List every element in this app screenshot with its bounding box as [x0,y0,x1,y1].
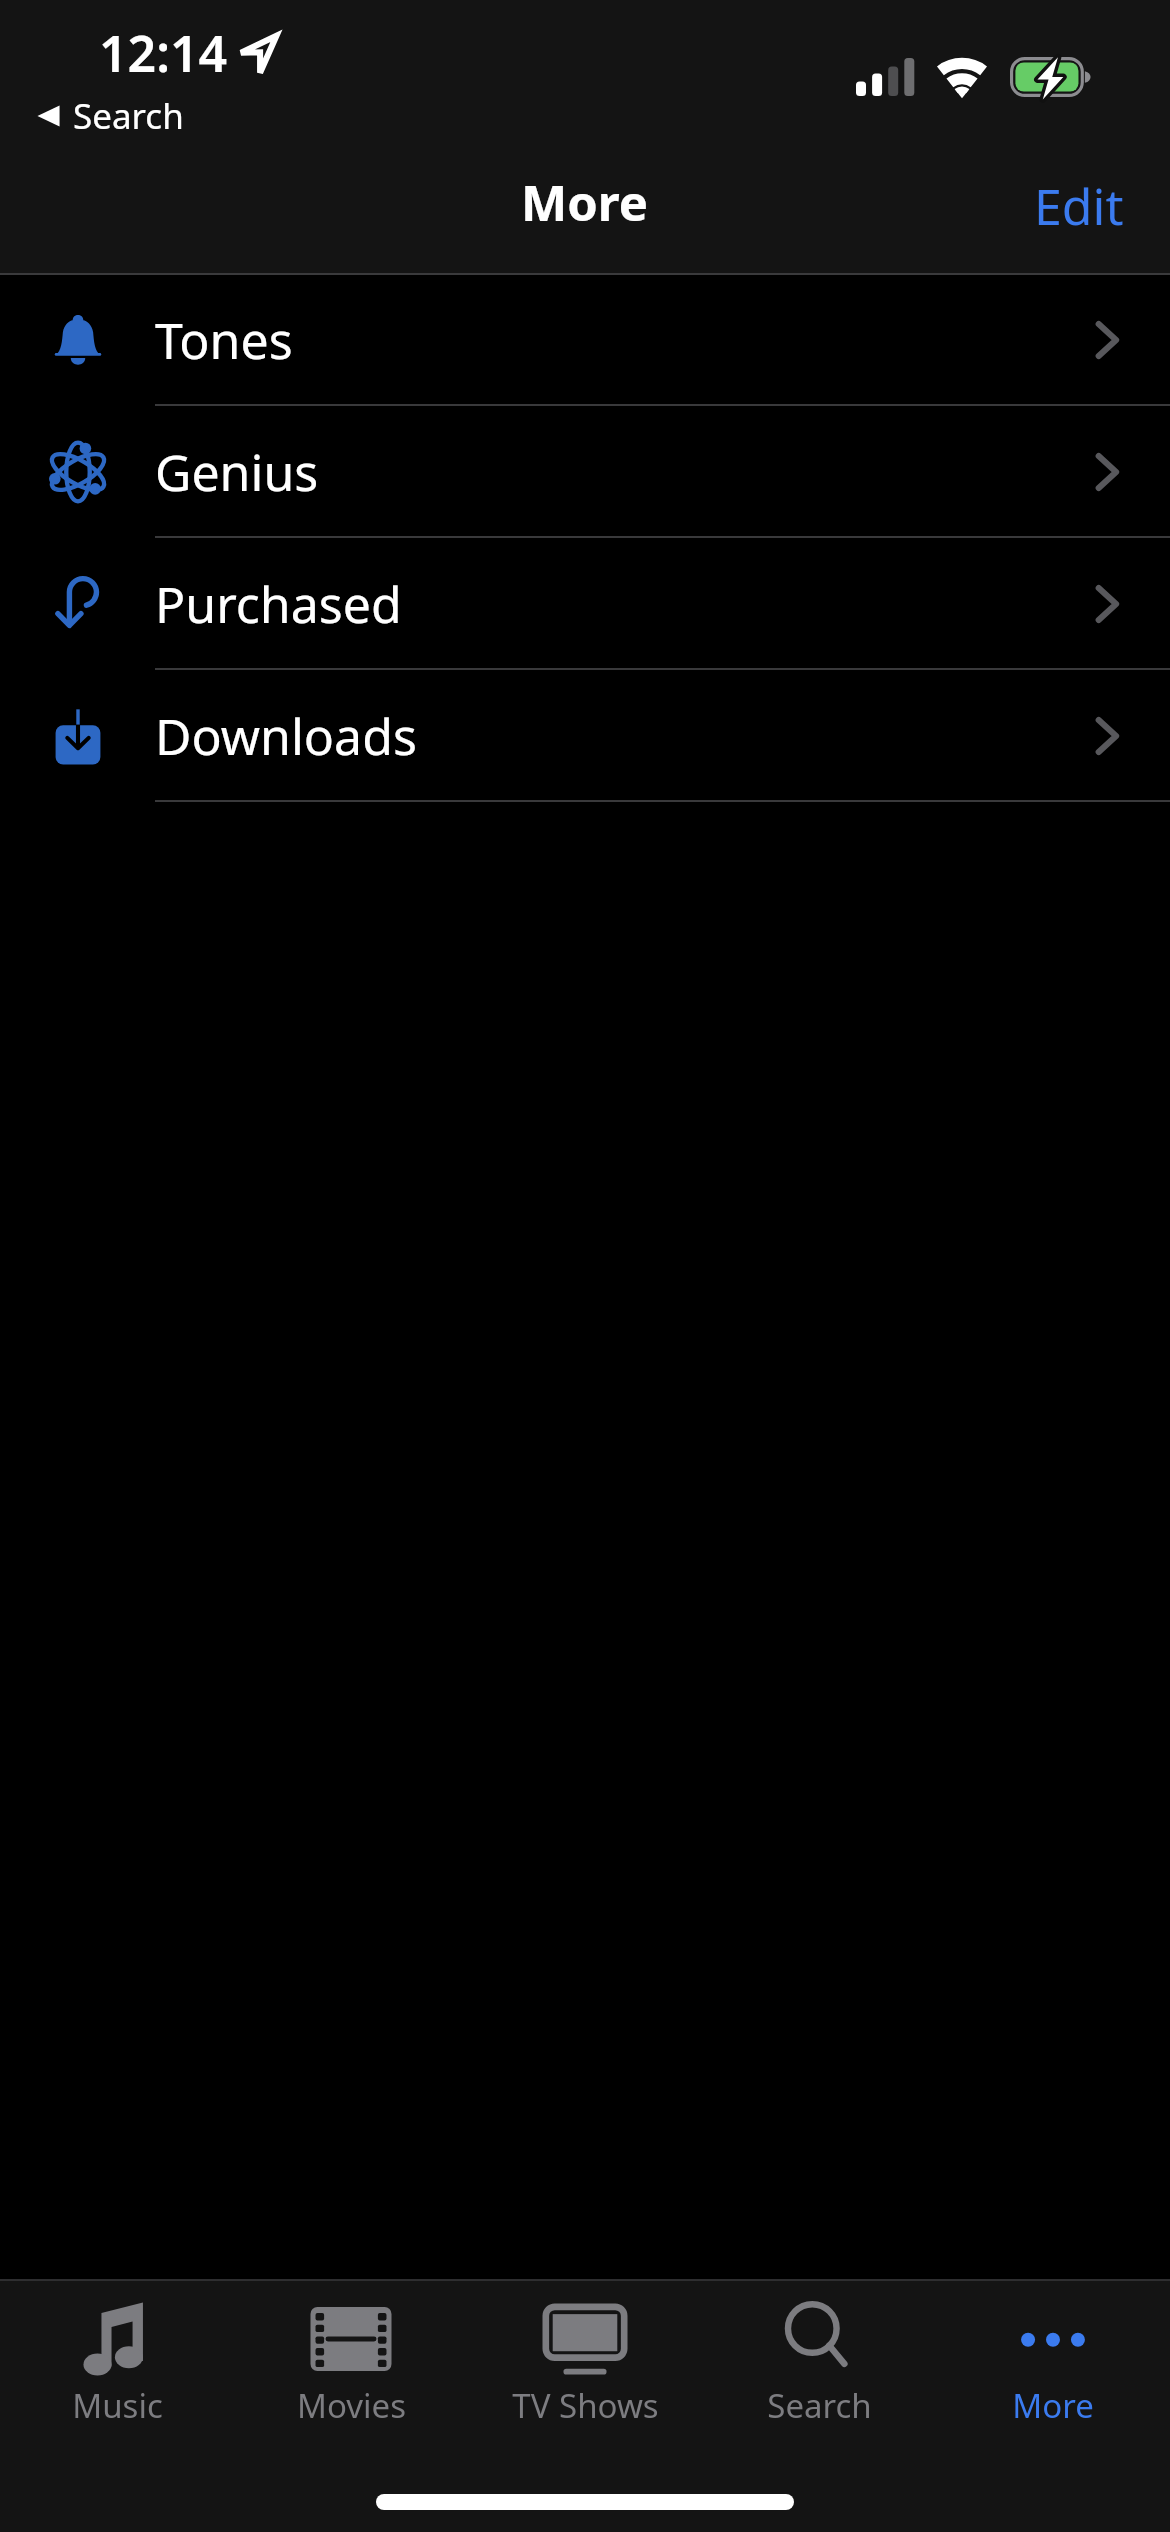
staticText: More [521,169,649,236]
staticText: Tones [155,306,293,374]
button[interactable]: Edit [1030,168,1128,244]
staticText: Music [72,2383,163,2428]
staticText: TV Shows [512,2383,659,2428]
staticText: Search [767,2383,872,2428]
other: More [1007,2301,1099,2377]
button[interactable]: Search [702,2281,936,2451]
staticText: Purchased [155,570,402,638]
button[interactable]: Genius [0,406,1170,538]
other: Purchased [45,571,111,637]
staticText: Search [73,92,184,140]
other: Genius [45,439,111,505]
button[interactable]: Downloads [0,670,1170,802]
staticText: More [1012,2383,1094,2428]
staticText: Movies [297,2383,406,2428]
staticText: Downloads [155,702,417,770]
staticText: 12:14 [99,19,228,87]
other: Downloads [45,703,111,769]
button[interactable]: More [936,2281,1170,2451]
other: Tones [45,307,111,373]
button[interactable]: Search [33,90,188,142]
other: Movies [305,2301,397,2377]
button[interactable]: Movies [234,2281,468,2451]
staticText: Edit [1034,172,1124,240]
other: Search [773,2301,865,2377]
button[interactable]: Purchased [0,538,1170,670]
other: Music [71,2301,163,2377]
button[interactable]: Tones [0,274,1170,406]
staticText: Genius [155,438,319,506]
other: TV Shows [539,2301,631,2377]
button[interactable]: TV Shows [468,2281,702,2451]
button[interactable]: Music [0,2281,234,2451]
